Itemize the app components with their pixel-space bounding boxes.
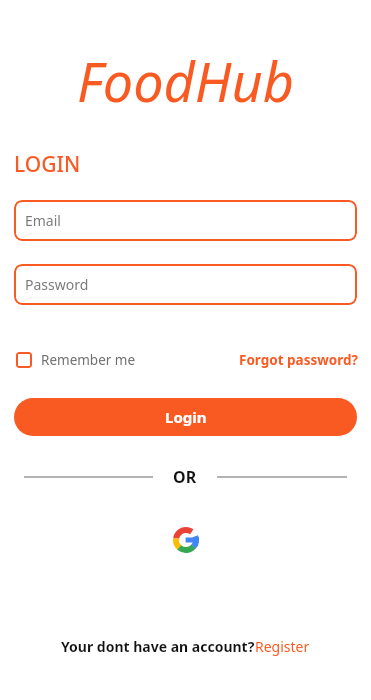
staticText: Forgot password? bbox=[239, 351, 358, 369]
staticText: Login bbox=[165, 407, 207, 427]
staticText: LOGIN bbox=[14, 150, 81, 179]
button[interactable]: Password bbox=[14, 264, 357, 305]
staticText: Remember me bbox=[41, 351, 136, 369]
button[interactable]: Sign in with Google bbox=[166, 520, 206, 560]
button[interactable]: Email bbox=[14, 200, 357, 241]
staticText: Your dont have an account? bbox=[61, 637, 255, 656]
staticText: Email bbox=[25, 211, 61, 230]
button[interactable]: Forgot password? bbox=[239, 347, 358, 373]
staticText: FoodHub bbox=[77, 44, 295, 118]
staticText: OR bbox=[173, 466, 197, 488]
button[interactable]: Login bbox=[14, 398, 357, 436]
staticText: Password bbox=[25, 275, 89, 294]
button[interactable]: Register bbox=[255, 637, 310, 656]
button[interactable]: Remember me bbox=[15, 347, 137, 373]
staticText: Register bbox=[255, 637, 310, 656]
